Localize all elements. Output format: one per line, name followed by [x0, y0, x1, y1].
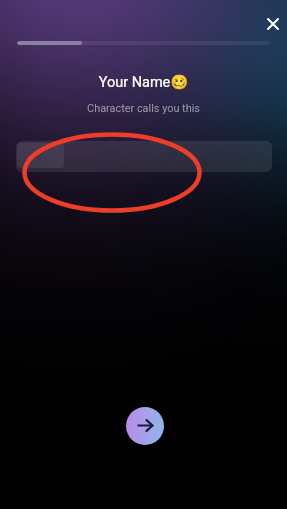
staticText: Character calls you this [0, 102, 287, 115]
button[interactable] [16, 141, 272, 172]
button[interactable]: Next [126, 407, 164, 445]
button[interactable]: Close [259, 10, 287, 38]
staticText: Your Name🥴 [0, 74, 287, 91]
